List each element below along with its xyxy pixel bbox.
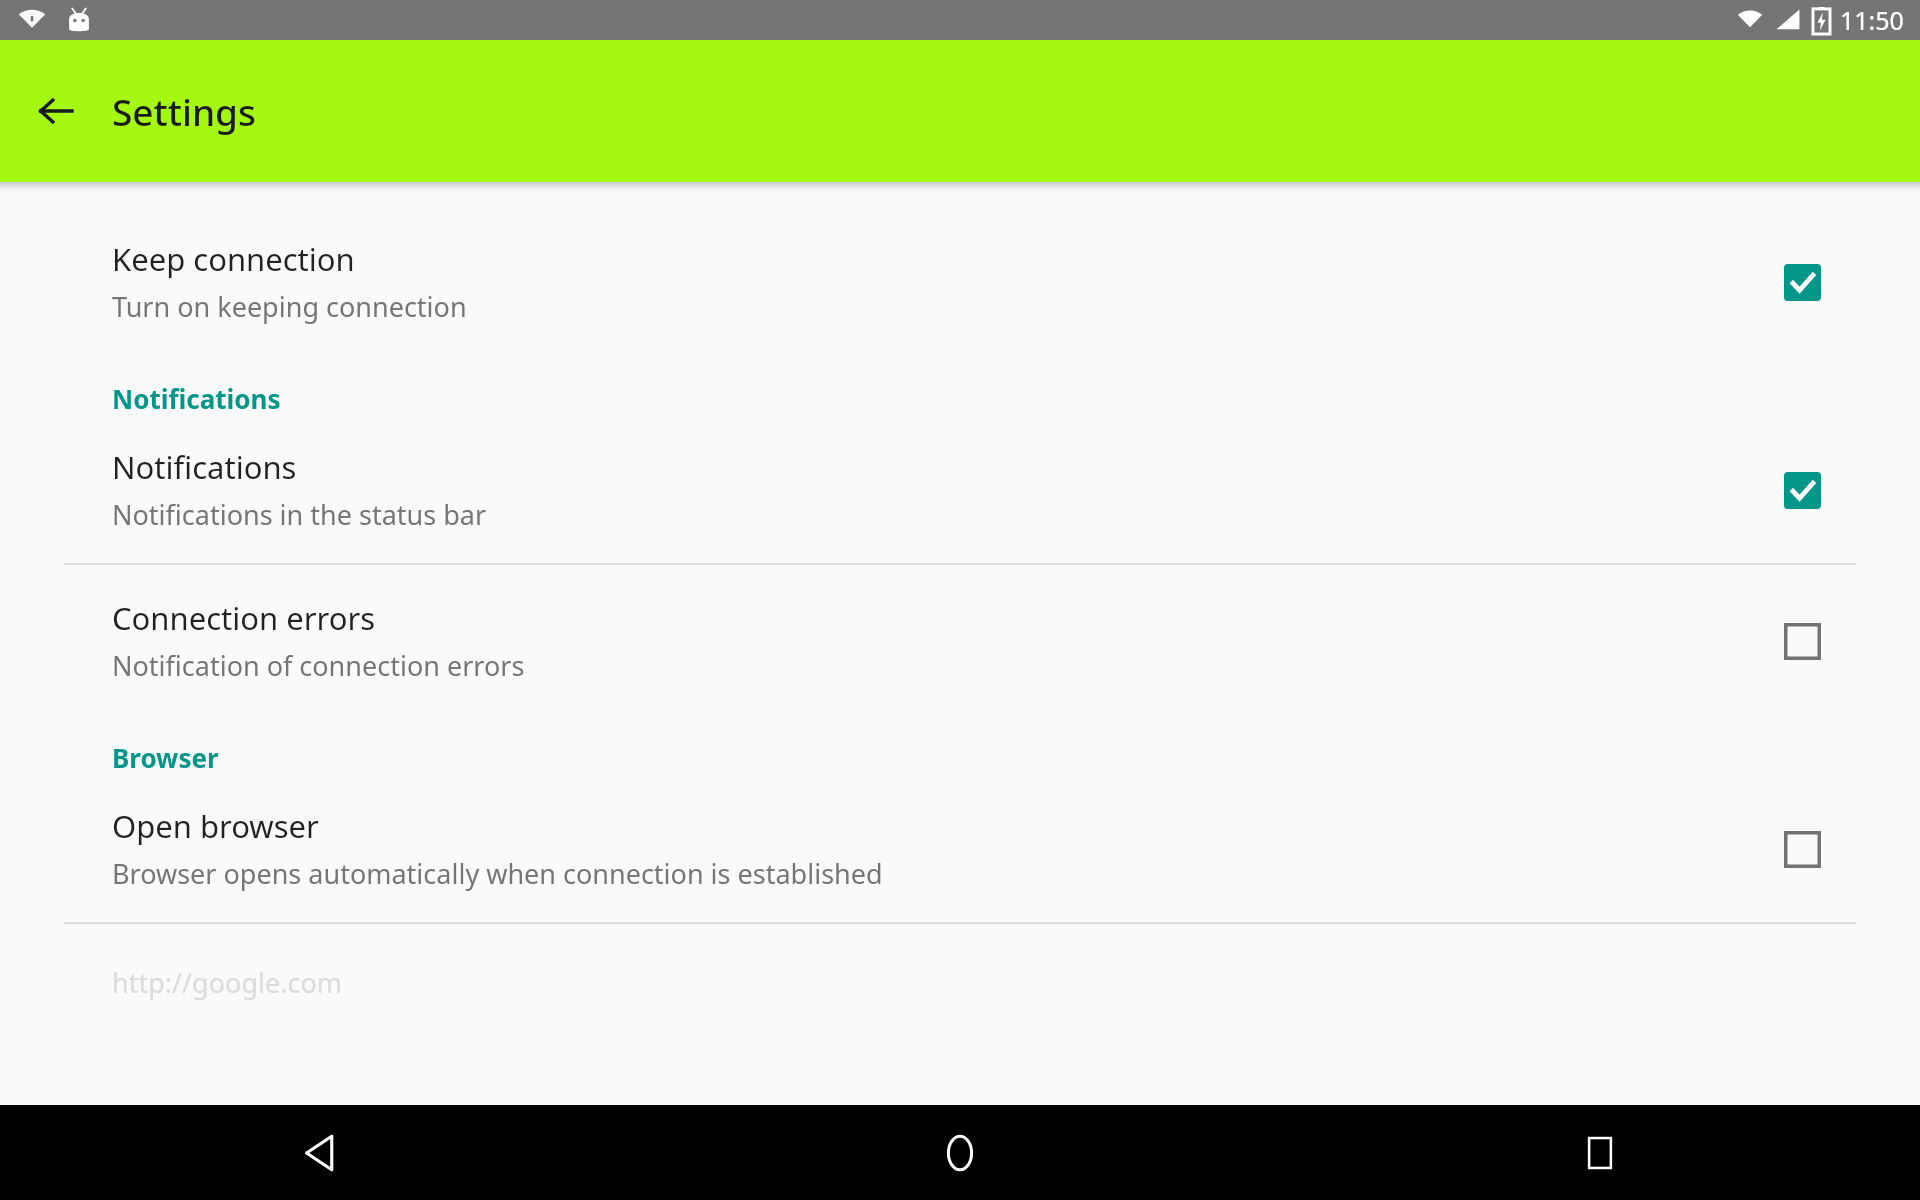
button[interactable]: Connection errors — [0, 565, 1920, 692]
staticText: Browser — [112, 740, 219, 775]
staticText: Notifications — [112, 381, 281, 416]
staticText: http://google.com — [112, 964, 342, 1001]
staticText: Notification of connection errors — [112, 647, 525, 684]
staticText: Open browser — [112, 805, 319, 847]
button[interactable]: Enabled — [1770, 250, 1834, 314]
staticText: Turn on keeping connection — [112, 288, 467, 325]
button[interactable]: Notifications — [0, 438, 1920, 541]
button[interactable]: Open browser — [0, 797, 1920, 900]
button[interactable]: Disabled — [1770, 817, 1834, 881]
button[interactable]: Back — [0, 1105, 640, 1200]
staticText: Settings — [112, 86, 257, 136]
staticText: 11:50 — [1840, 3, 1904, 37]
button[interactable]: Back — [28, 83, 84, 139]
button[interactable]: Recent apps — [1280, 1105, 1920, 1200]
button[interactable]: Enabled — [1770, 458, 1834, 522]
staticText: Keep connection — [112, 238, 355, 280]
staticText: Browser opens automatically when connect… — [112, 855, 883, 892]
button[interactable]: Disabled — [1770, 609, 1834, 673]
staticText: Notifications — [112, 446, 297, 488]
staticText: Connection errors — [112, 597, 376, 639]
staticText: Notifications in the status bar — [112, 496, 487, 533]
button[interactable]: Keep connection — [0, 230, 1920, 333]
button[interactable]: Home — [640, 1105, 1280, 1200]
